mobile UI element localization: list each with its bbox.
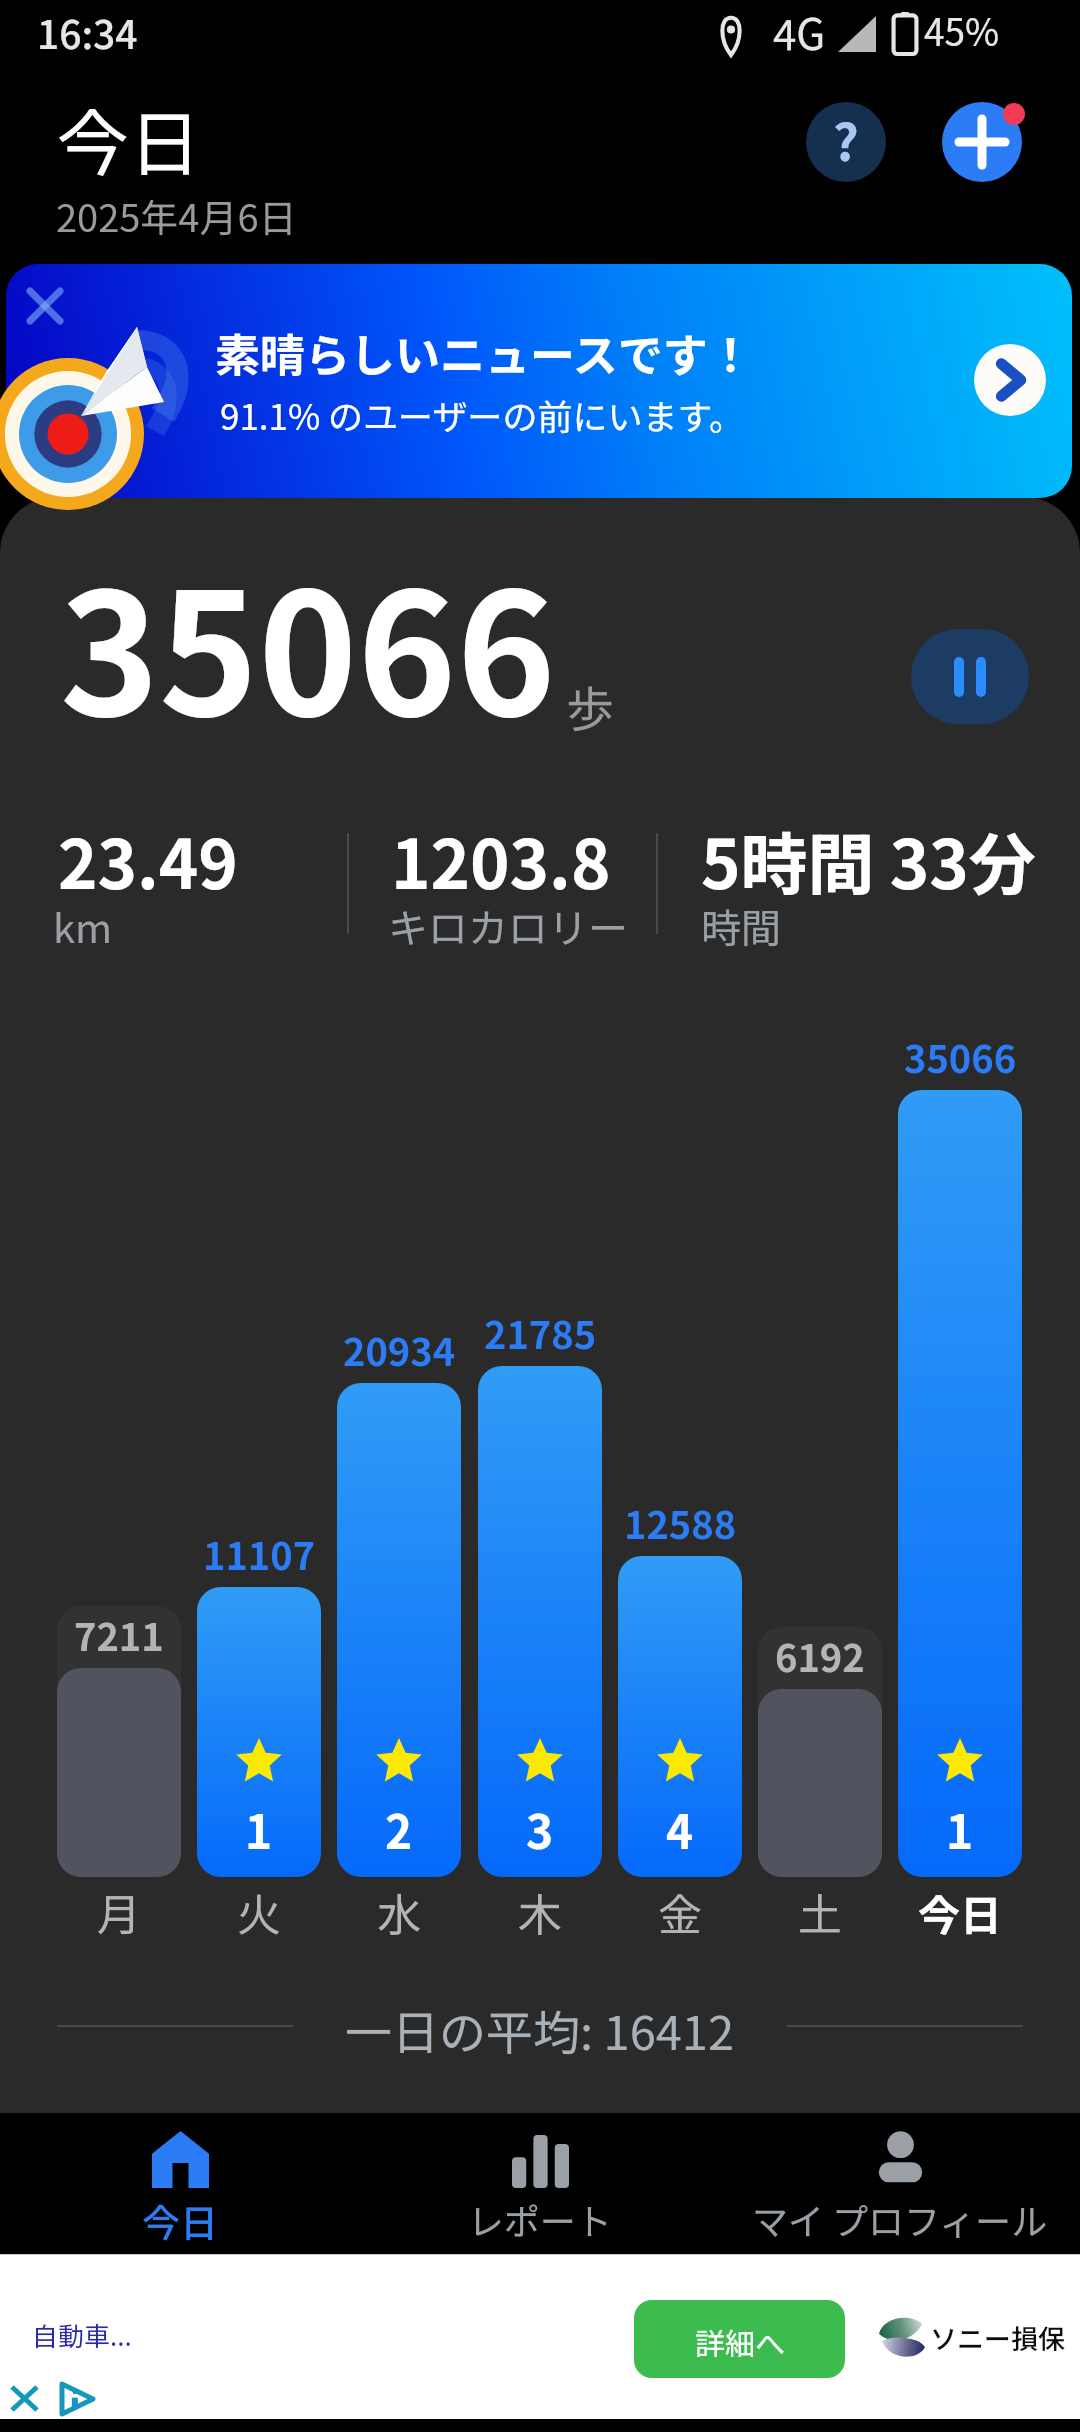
staticText: 4 xyxy=(666,1796,694,1863)
button[interactable]: 2 xyxy=(337,1383,461,1877)
staticText: 12588 xyxy=(624,1495,737,1550)
staticText: 歩 xyxy=(566,671,615,741)
button[interactable]: Pause step counting xyxy=(911,629,1029,724)
button[interactable]: Open details xyxy=(974,344,1046,416)
staticText: 月 xyxy=(97,1880,141,1944)
button[interactable]: 1 xyxy=(898,1090,1022,1877)
staticText: 水 xyxy=(377,1880,421,1944)
staticText: 3 xyxy=(526,1796,554,1863)
staticText: 6192 xyxy=(775,1628,865,1683)
staticText: 35066 xyxy=(60,521,556,764)
button[interactable]: 4 xyxy=(618,1556,742,1877)
staticText: 2 xyxy=(385,1796,413,1863)
staticText: 20934 xyxy=(343,1322,456,1377)
button[interactable]: 今日 xyxy=(0,2113,360,2253)
staticText: 火 xyxy=(237,1880,281,1944)
button[interactable] xyxy=(6,264,1072,498)
staticText: 今日 xyxy=(57,86,202,190)
staticText: 今日 xyxy=(142,2193,219,2248)
button[interactable]: レポート xyxy=(360,2113,720,2253)
button[interactable]: Close ad xyxy=(11,2386,38,2411)
staticText: 木 xyxy=(518,1880,562,1944)
staticText: 詳細へ xyxy=(695,2320,785,2363)
button[interactable]: Add activity xyxy=(942,102,1022,182)
staticText: 45% xyxy=(924,3,1000,57)
staticText: 23.49 xyxy=(58,811,238,908)
staticText: キロカロリー xyxy=(388,897,628,955)
staticText: 1 xyxy=(946,1796,974,1863)
staticText: 今日 xyxy=(918,1882,1003,1943)
staticText: 土 xyxy=(798,1880,842,1944)
staticText: 21785 xyxy=(484,1305,597,1360)
staticText: 11107 xyxy=(203,1526,316,1581)
button[interactable]: 1 xyxy=(197,1587,321,1877)
button[interactable]: マイ プロフィール xyxy=(720,2113,1080,2253)
staticText: 時間 xyxy=(701,897,781,955)
staticText: 金 xyxy=(658,1880,702,1944)
staticText: ソニー損保 xyxy=(930,2318,1065,2357)
staticText: 素晴らしいニュースです！ xyxy=(215,320,753,385)
button[interactable] xyxy=(57,1668,181,1877)
staticText: 1 xyxy=(245,1796,273,1863)
staticText: 16:34 xyxy=(37,4,138,60)
staticText: ? xyxy=(833,103,859,175)
staticText: 2025年4月6日 xyxy=(56,188,297,243)
button[interactable]: Ad choices xyxy=(59,2382,95,2416)
staticText: 35066 xyxy=(904,1029,1017,1084)
staticText: 7211 xyxy=(74,1607,164,1662)
staticText: km xyxy=(53,897,113,955)
staticText: 自動車... xyxy=(32,2316,132,2354)
button[interactable]: 詳細へ xyxy=(634,2300,845,2378)
staticText: レポート xyxy=(468,2193,613,2245)
button[interactable] xyxy=(758,1689,882,1877)
button[interactable]: Close banner xyxy=(28,289,62,323)
staticText: 一日の平均: 16412 xyxy=(345,1995,735,2063)
staticText: 1203.8 xyxy=(391,811,611,908)
staticText: マイ プロフィール xyxy=(752,2193,1048,2245)
button[interactable]: Help xyxy=(806,102,886,182)
button[interactable]: 3 xyxy=(478,1366,602,1877)
staticText: 5時間 33分 xyxy=(701,811,1036,908)
staticText: 91.1% のユーザーの前にいます。 xyxy=(220,389,744,440)
staticText: 4G xyxy=(773,1,826,62)
